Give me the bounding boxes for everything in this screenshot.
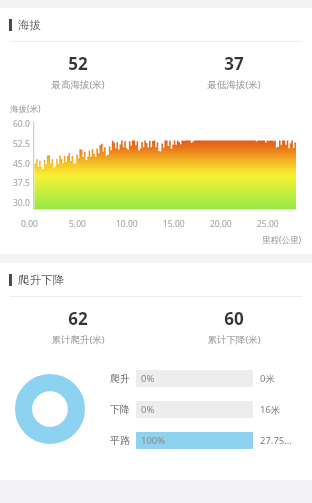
staticText: 27.75... [260,434,292,447]
button[interactable]: 海拔 [0,8,312,41]
staticText: 爬升 [110,372,130,385]
staticText: 16米 [260,403,281,416]
staticText: 累计爬升(米) [51,333,105,346]
staticText: 30.0 [13,197,30,209]
staticText: 最高海拔(米) [51,78,105,91]
staticText: 15.00 [163,218,185,230]
staticText: 累计下降(米) [207,333,261,346]
staticText: 52.5 [13,138,30,150]
staticText: 60.0 [13,118,30,130]
staticText: 100% [141,434,166,447]
staticText: 最低海拔(米) [207,78,261,91]
button[interactable]: 平路 [110,428,302,452]
staticText: 52 [68,52,88,75]
button[interactable]: 下降 [110,397,302,421]
staticText: 爬升下降 [18,273,64,287]
staticText: 45.0 [13,158,30,170]
staticText: 25.00 [257,218,279,230]
staticText: 0% [141,372,155,385]
staticText: 下降 [110,403,130,416]
staticText: 0米 [260,372,275,385]
button[interactable]: 爬升下降 [0,263,312,296]
button[interactable]: 爬升 [110,366,302,390]
staticText: 5.00 [69,218,86,230]
staticText: 平路 [110,434,130,447]
other: 坡度分布图 [15,374,85,444]
staticText: 里程(公里) [262,234,302,246]
staticText: 海拔 [18,18,41,32]
staticText: 0.00 [21,218,38,230]
staticText: 10.00 [116,218,138,230]
staticText: 海拔(米) [10,103,41,115]
staticText: 37 [224,52,244,75]
staticText: 37.5 [13,177,30,189]
staticText: 20.00 [210,218,232,230]
staticText: 62 [68,307,88,330]
staticText: 0% [141,403,155,416]
staticText: 60 [224,307,244,330]
